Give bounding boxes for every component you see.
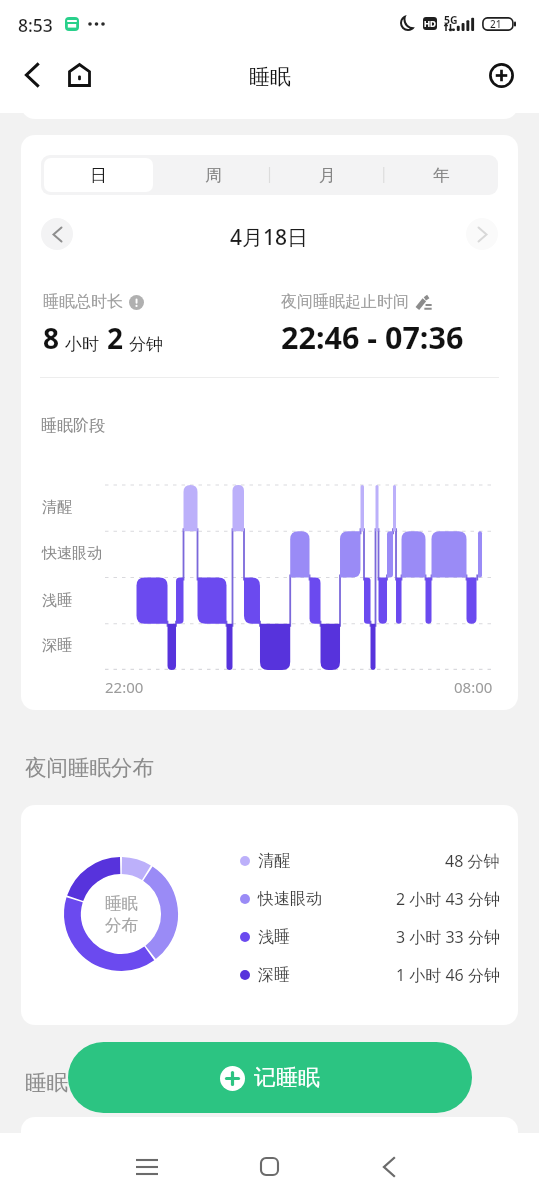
button[interactable]: Next day bbox=[466, 218, 498, 250]
staticText: 2 bbox=[107, 319, 124, 357]
staticText: 清醒 bbox=[258, 851, 290, 871]
staticText: 睡眠 bbox=[105, 893, 138, 914]
button[interactable]: Add bbox=[479, 53, 523, 97]
staticText: 3 小时 33 分钟 bbox=[396, 926, 500, 948]
staticText: 睡眠总时长 bbox=[43, 292, 123, 312]
staticText: 夜间睡眠起止时间 bbox=[281, 292, 409, 312]
staticText: 浅睡 bbox=[42, 591, 72, 610]
button[interactable]: Home bbox=[57, 53, 101, 97]
staticText: 记睡眠 bbox=[254, 1064, 320, 1092]
staticText: 深睡 bbox=[258, 965, 290, 985]
staticText: 8:53 bbox=[18, 13, 53, 37]
button[interactable]: 周 bbox=[159, 158, 267, 192]
button[interactable]: Previous day bbox=[41, 218, 73, 250]
button[interactable]: Home bbox=[247, 1133, 291, 1200]
staticText: 分布 bbox=[105, 915, 138, 936]
staticText: 快速眼动 bbox=[42, 544, 102, 563]
staticText: 21 bbox=[490, 17, 502, 31]
button[interactable]: Back bbox=[367, 1133, 411, 1200]
staticText: 4月18日 bbox=[230, 223, 309, 252]
button[interactable]: 月 bbox=[273, 158, 381, 192]
button[interactable]: Back bbox=[10, 53, 54, 97]
button[interactable]: Recent apps bbox=[125, 1133, 169, 1200]
staticText: 浅睡 bbox=[258, 927, 290, 947]
staticText: 快速眼动 bbox=[258, 889, 322, 909]
staticText: 小时 bbox=[65, 334, 99, 355]
button[interactable]: 年 bbox=[387, 158, 495, 192]
staticText: 22:46 - 07:36 bbox=[281, 316, 464, 358]
staticText: 月 bbox=[319, 165, 336, 186]
staticText: 周 bbox=[205, 165, 222, 186]
staticText: 5G bbox=[444, 13, 458, 27]
staticText: 48 分钟 bbox=[445, 850, 500, 872]
button[interactable]: 日 bbox=[44, 158, 153, 192]
staticText: 清醒 bbox=[42, 498, 72, 517]
staticText: 1 小时 46 分钟 bbox=[396, 964, 500, 986]
staticText: 22:00 bbox=[105, 677, 144, 697]
staticText: 夜间睡眠分布 bbox=[25, 754, 154, 781]
staticText: 日 bbox=[90, 165, 107, 186]
staticText: 年 bbox=[433, 165, 450, 186]
staticText: 睡眠 bbox=[25, 1069, 68, 1096]
staticText: 睡眠阶段 bbox=[41, 416, 105, 436]
staticText: 分钟 bbox=[129, 334, 163, 355]
staticText: 深睡 bbox=[42, 636, 72, 655]
staticText: HD bbox=[424, 18, 436, 29]
staticText: 2 小时 43 分钟 bbox=[396, 888, 500, 910]
staticText: 睡眠 bbox=[249, 64, 291, 90]
staticText: 08:00 bbox=[454, 677, 493, 697]
button[interactable]: 记睡眠 bbox=[68, 1042, 472, 1113]
staticText: 8 bbox=[43, 319, 60, 357]
